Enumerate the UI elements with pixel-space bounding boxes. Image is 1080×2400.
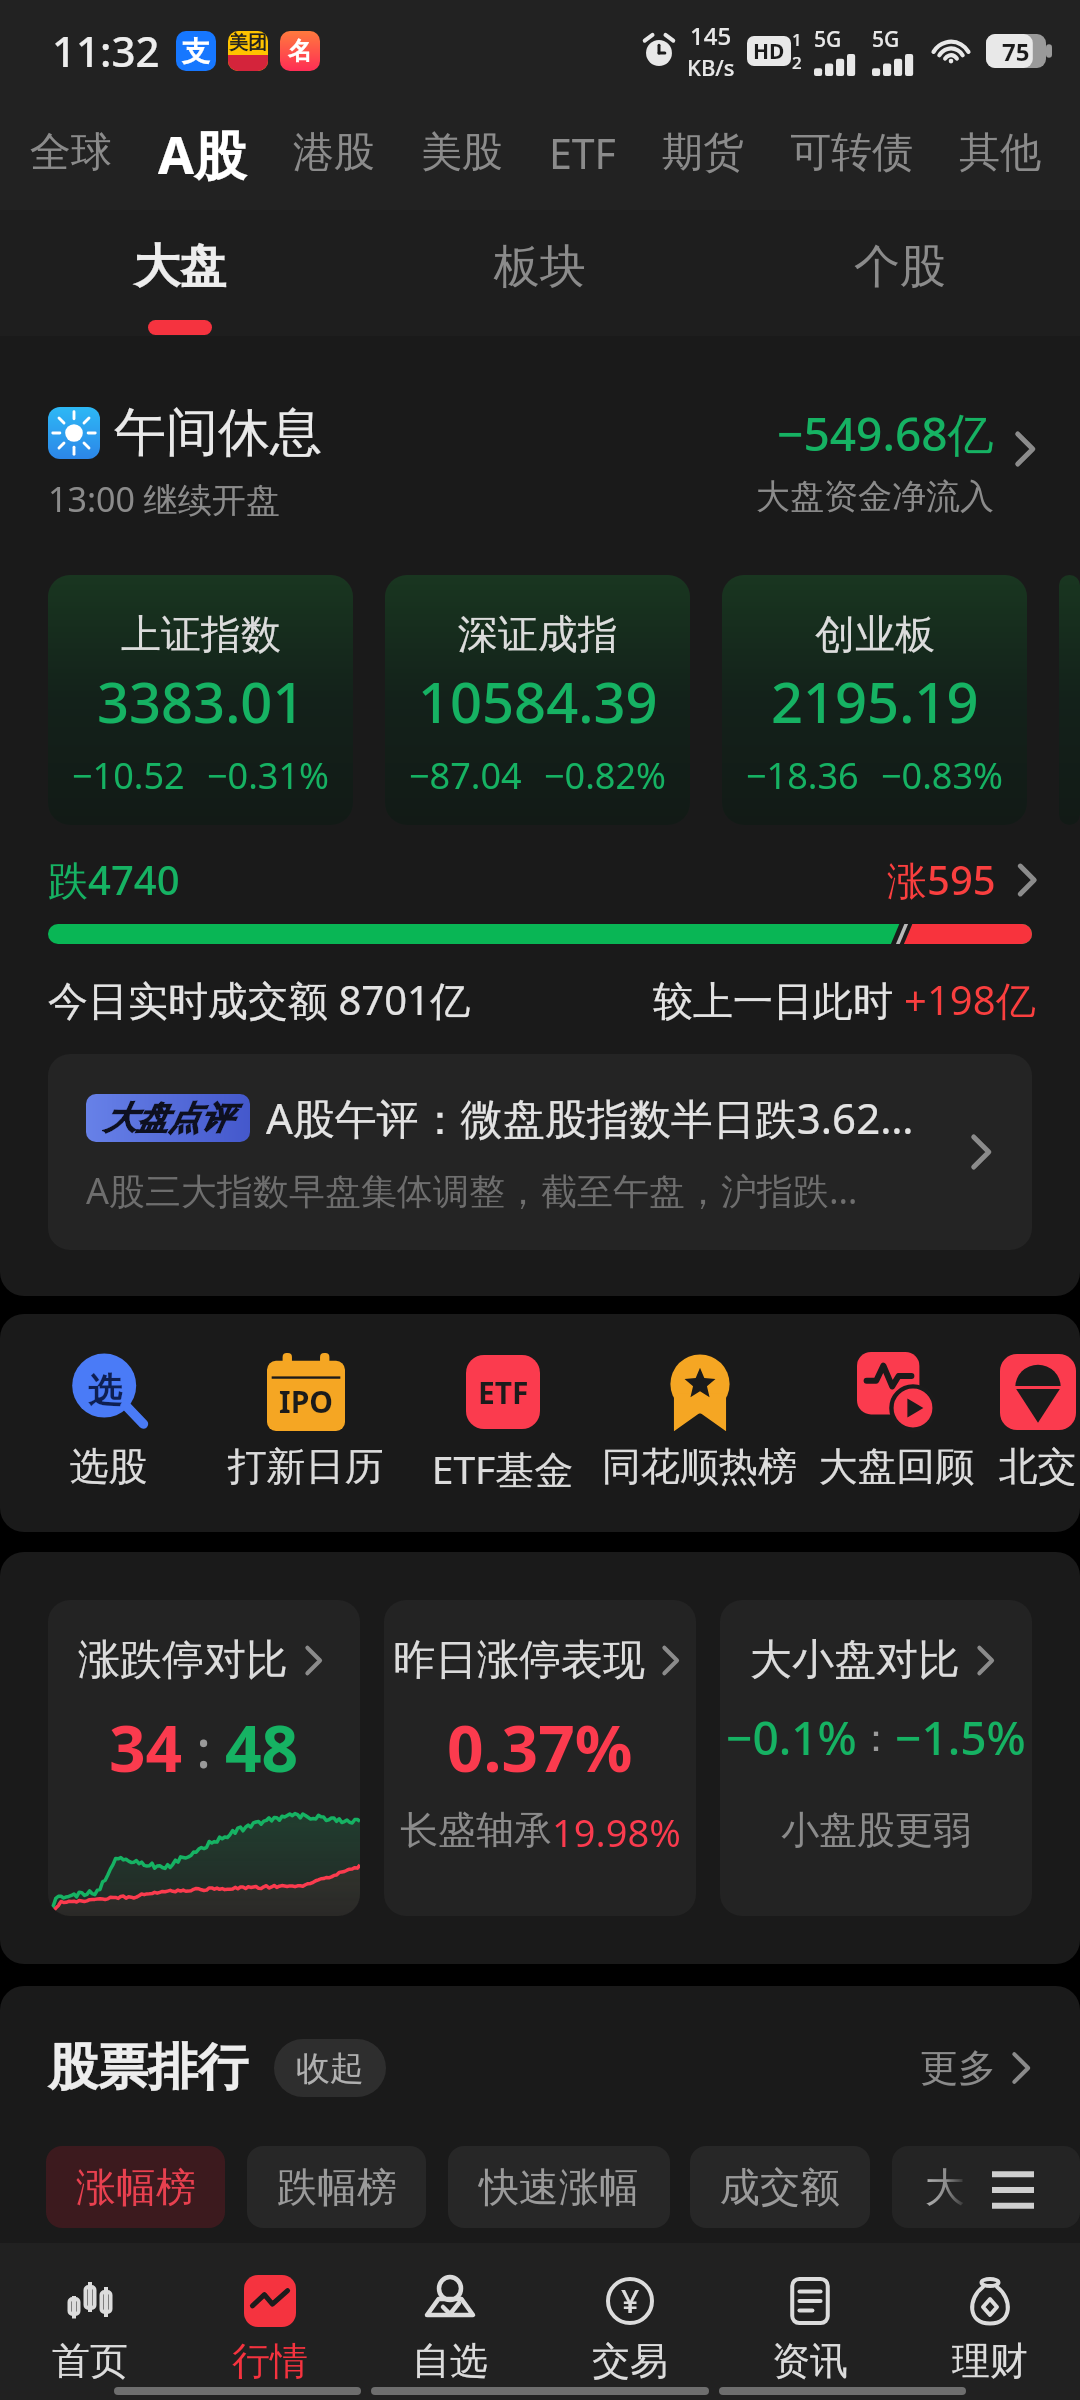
staticText: ETF	[549, 125, 616, 181]
staticText: 145	[690, 19, 732, 52]
button[interactable]: ETF	[526, 111, 639, 195]
staticText: 港股	[293, 127, 375, 179]
staticText: 大盘回顾	[798, 1442, 995, 1491]
button[interactable]: 大小盘对比	[720, 1600, 1032, 1916]
staticText: 午间休息	[114, 400, 322, 466]
button[interactable]: 个股	[720, 206, 1080, 336]
button[interactable]: 大盘资金净流入 详情	[756, 400, 1046, 518]
staticText: 首页	[52, 2337, 128, 2385]
button[interactable]: 可转债	[767, 113, 936, 193]
staticText: 板块	[494, 238, 586, 296]
staticText: 同花顺热榜	[601, 1442, 798, 1491]
staticText: 5G	[814, 25, 842, 54]
staticText: 涨595	[887, 852, 996, 907]
staticText: 3383.01	[97, 663, 305, 739]
button[interactable]: 昨日涨停表现	[384, 1600, 696, 1916]
staticText: −1.5%	[895, 1706, 1026, 1769]
button[interactable]: 理财	[900, 2275, 1080, 2385]
staticText: 2	[792, 51, 802, 74]
staticText: 自选	[412, 2337, 488, 2385]
staticText: −10.52	[72, 751, 185, 800]
staticText: 上证指数	[121, 609, 281, 659]
staticText: A股	[158, 118, 246, 189]
button[interactable]: IPO	[207, 1352, 404, 1491]
staticText: 股票排行	[48, 2036, 248, 2099]
staticText: 昨日涨停表现	[393, 1634, 645, 1687]
staticText: 较上一日此时	[653, 972, 904, 1027]
button[interactable]: 大盘回顾	[798, 1352, 995, 1491]
button[interactable]: 成交额	[690, 2146, 870, 2228]
staticText: 收起	[296, 2047, 364, 2090]
button[interactable]: ¥	[540, 2275, 720, 2385]
button[interactable]: 北交	[995, 1352, 1080, 1491]
staticText: A股午评：微盘股指数半日跌3.62…	[266, 1089, 914, 1146]
button[interactable]: More lists	[992, 2168, 1034, 2212]
staticText: 2195.19	[771, 663, 979, 739]
staticText: A股三大指数早盘集体调整，截至午盘，沪指跌…	[86, 1166, 858, 1215]
staticText: +198亿	[904, 972, 1036, 1027]
button[interactable]: 北证50	[1059, 575, 1080, 825]
button[interactable]: 创业板	[722, 575, 1027, 825]
button[interactable]: 首页	[0, 2275, 180, 2385]
button[interactable]: 涨幅榜	[46, 2146, 225, 2228]
staticText: 75	[1002, 35, 1030, 68]
button[interactable]: 深证成指	[385, 575, 690, 825]
staticText: 可转债	[790, 127, 913, 179]
button[interactable]: 跌幅榜	[247, 2146, 426, 2228]
button[interactable]: 资讯	[720, 2275, 900, 2385]
staticText: 大盘	[134, 238, 226, 296]
button[interactable]: 自选	[360, 2275, 540, 2385]
staticText: 创业板	[815, 609, 935, 659]
staticText: 期货	[662, 127, 744, 179]
button[interactable]: 其他	[936, 113, 1064, 193]
button[interactable]: ETF	[404, 1352, 601, 1495]
button[interactable]: 期货	[639, 113, 767, 193]
staticText: 大盘资金净流入	[756, 475, 994, 518]
staticText: 今日实时成交额 8701亿	[48, 972, 470, 1027]
button[interactable]: A股	[134, 110, 270, 197]
button[interactable]: 美股	[398, 113, 526, 193]
button[interactable]: 板块	[360, 206, 720, 336]
staticText: 大小盘对比	[750, 1634, 960, 1687]
button[interactable]: 快速涨幅	[448, 2146, 670, 2228]
staticText: 小盘股更弱	[781, 1806, 971, 1854]
staticText: 大	[925, 2162, 965, 2212]
staticText: 1	[792, 28, 802, 51]
button[interactable]: 收起	[274, 2039, 386, 2097]
button[interactable]: 大盘点评	[48, 1054, 1032, 1250]
button[interactable]: 大盘	[0, 206, 360, 336]
staticText: 支	[182, 34, 210, 69]
staticText: 全球	[30, 127, 112, 179]
staticText: 跌4740	[48, 852, 180, 907]
button[interactable]: 行情	[180, 2275, 360, 2385]
button[interactable]: 港股	[270, 113, 398, 193]
staticText: 0.37%	[447, 1704, 633, 1791]
staticText: 11:32	[52, 22, 160, 79]
button[interactable]: 上证指数	[48, 575, 353, 825]
staticText: 行情	[232, 2337, 308, 2385]
button[interactable]: 同花顺热榜	[601, 1352, 798, 1491]
staticText: 名	[288, 36, 312, 66]
staticText: 选	[88, 1369, 122, 1412]
button[interactable]: 全球	[8, 113, 134, 193]
staticText: KB/s	[687, 52, 735, 82]
staticText: 48	[225, 1704, 299, 1791]
staticText: −0.83%	[881, 751, 1003, 800]
staticText: 美股	[421, 127, 503, 179]
button[interactable]: 大盘排行	[892, 2146, 1080, 2228]
staticText: 涨幅榜	[76, 2162, 196, 2212]
staticText: 大盘点评	[104, 1098, 232, 1138]
staticText: 跌幅榜	[277, 2162, 397, 2212]
button[interactable]: 选	[10, 1352, 207, 1491]
button[interactable]: 跌4740	[0, 846, 1080, 913]
staticText: 理财	[952, 2337, 1028, 2385]
staticText: 涨跌停对比	[78, 1634, 288, 1687]
button[interactable]: 涨跌停对比	[48, 1600, 360, 1916]
staticText: ¥	[621, 2279, 640, 2323]
staticText: 19.98%	[552, 1806, 681, 1858]
staticText: 10584.39	[418, 663, 658, 739]
staticText: −87.04	[409, 751, 522, 800]
staticText: IPO	[279, 1381, 334, 1422]
staticText: 个股	[854, 238, 946, 296]
staticText: 快速涨幅	[479, 2162, 639, 2212]
